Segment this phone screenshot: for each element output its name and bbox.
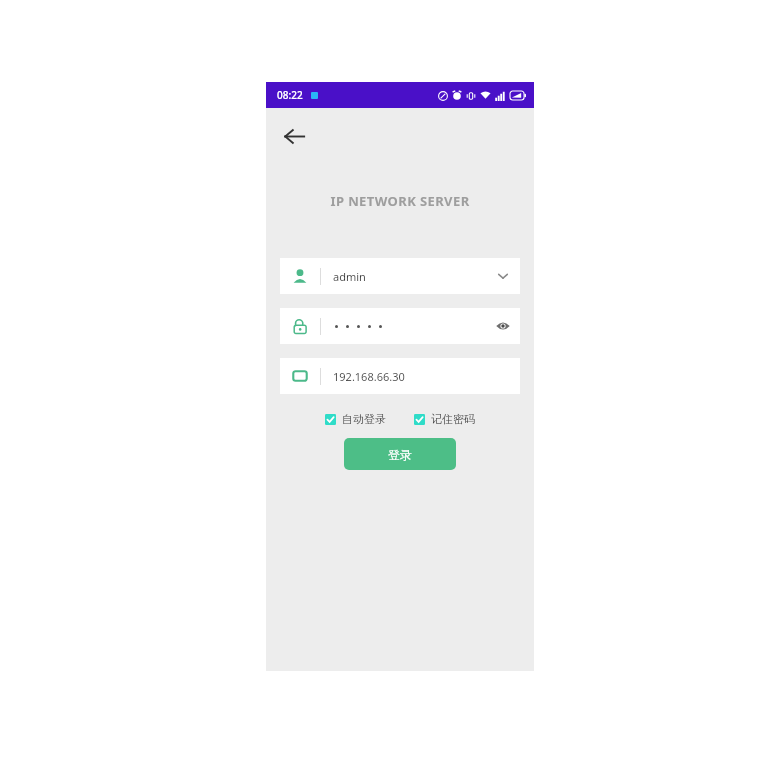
button[interactable]: Show password (486, 308, 520, 344)
button[interactable]: 自动登录 (325, 412, 386, 426)
button[interactable]: Back (276, 118, 312, 154)
button[interactable]: Show password (280, 308, 520, 344)
staticText: admin (333, 269, 486, 284)
staticText: 08:22 (277, 88, 303, 102)
button[interactable]: admin (280, 258, 520, 294)
staticText: 登录 (388, 447, 412, 462)
staticText: IP NETWORK SERVER (266, 192, 534, 210)
button[interactable]: 记住密码 (414, 412, 475, 426)
staticText: 自动登录 (342, 412, 386, 426)
staticText: 记住密码 (431, 412, 475, 426)
staticText: 192.168.66.30 (333, 369, 520, 384)
button[interactable]: 192.168.66.30 (280, 358, 520, 394)
button[interactable]: Show user list (486, 258, 520, 294)
button[interactable]: 登录 (344, 438, 456, 470)
